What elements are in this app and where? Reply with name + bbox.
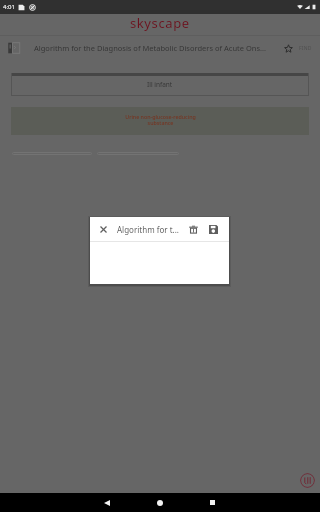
staticText: skyscape [130,14,190,32]
button[interactable]: Close [90,217,117,241]
staticText: Algorithm for t... [117,224,184,235]
button[interactable]: Back [97,493,117,512]
button[interactable]: FIND [296,38,315,58]
button[interactable]: Book [8,38,28,58]
staticText: Ill infant [147,80,173,89]
button[interactable]: Delete [184,217,202,241]
button[interactable]: Save [202,217,224,241]
button[interactable]: Skyscape [300,473,315,488]
button[interactable]: Recents [202,493,222,512]
staticText: Urine non-glucose-reducing substance [125,113,196,127]
staticText: Algorithm for the Diagnosis of Metabolic… [34,43,269,53]
button[interactable]: Favorite [280,40,296,56]
staticText: FIND [299,45,312,52]
button[interactable]: Home [150,493,170,512]
staticText: 4:01 [3,3,15,11]
